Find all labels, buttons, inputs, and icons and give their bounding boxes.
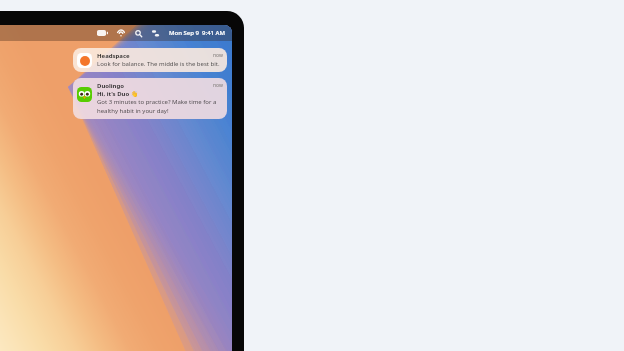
staticText: Mon Sep 9 9:41 AM — [169, 29, 225, 37]
button[interactable]: Headspace — [73, 48, 227, 72]
staticText: Look for balance. The middle is the best… — [97, 60, 220, 68]
staticText: Got 3 minutes to practice? Make time for… — [97, 98, 217, 114]
staticText: Duolingo — [97, 82, 125, 90]
button[interactable]: Control Center — [147, 30, 164, 37]
staticText: Headspace — [97, 52, 130, 60]
button[interactable]: Duolingo — [73, 78, 227, 119]
staticText: Hi, it's Duo 👋 — [97, 90, 139, 98]
button[interactable]: Search — [130, 30, 147, 37]
button[interactable]: Battery — [93, 30, 112, 36]
button[interactable]: Wi-Fi — [112, 30, 130, 37]
staticText: now — [213, 82, 223, 89]
staticText: now — [213, 52, 223, 59]
